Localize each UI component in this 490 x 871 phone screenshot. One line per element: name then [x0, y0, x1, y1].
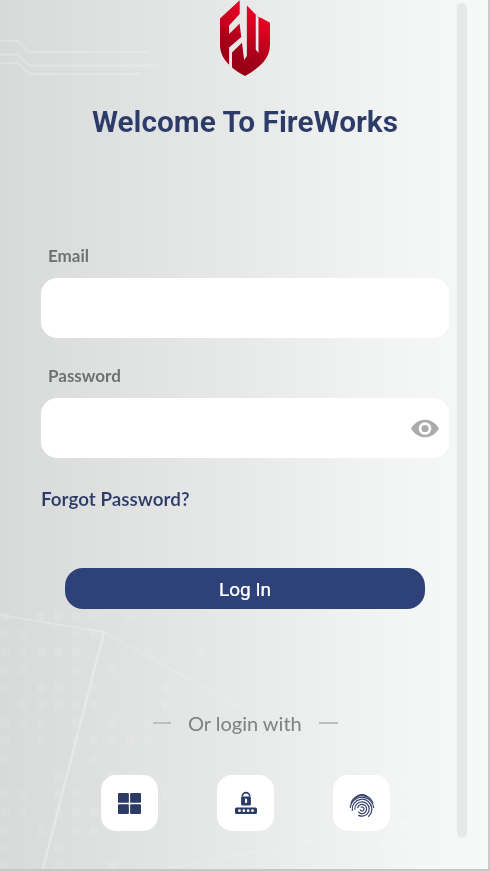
button[interactable]: Sign in with password	[217, 775, 274, 831]
button[interactable]: Sign in with fingerprint	[333, 775, 390, 831]
button[interactable]: Log In	[65, 568, 425, 609]
staticText: Welcome To FireWorks	[0, 104, 490, 139]
button[interactable]: Password input	[41, 398, 449, 458]
staticText: Password	[48, 365, 121, 385]
button[interactable]: Forgot Password?	[41, 487, 190, 510]
button[interactable]: Sign in with Microsoft	[101, 775, 158, 831]
staticText: Email	[48, 245, 89, 265]
button[interactable]: Show password	[404, 407, 446, 449]
staticText: Or login with	[188, 711, 302, 735]
staticText: Log In	[219, 578, 272, 600]
